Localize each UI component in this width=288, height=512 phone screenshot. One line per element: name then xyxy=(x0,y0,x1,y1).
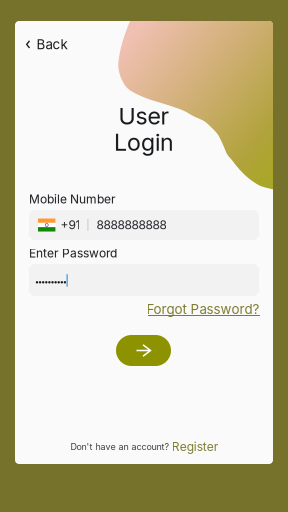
staticText: Forgot Password? xyxy=(146,301,259,317)
button[interactable]: Register xyxy=(172,439,219,454)
staticText: Register xyxy=(172,439,219,454)
staticText: Don't have an account? xyxy=(70,441,169,452)
staticText: Mobile Number xyxy=(29,192,116,206)
staticText: User xyxy=(118,102,169,130)
button[interactable]: Back xyxy=(15,31,95,57)
button[interactable]: Continue xyxy=(116,335,171,366)
staticText: +91 xyxy=(60,218,80,232)
staticText: Enter Password xyxy=(29,246,117,260)
button[interactable]: Forgot Password? xyxy=(142,300,260,322)
staticText: Login xyxy=(114,128,174,156)
staticText: Back xyxy=(36,36,67,52)
staticText: 8888888888 xyxy=(96,218,166,232)
